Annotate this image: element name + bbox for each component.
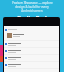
staticText: Android screen [21, 9, 43, 13]
button[interactable] [5, 62, 59, 68]
button[interactable] [5, 27, 59, 32]
button[interactable] [5, 48, 59, 54]
staticText: design & build for every [15, 5, 49, 9]
staticText: Radio Pad [17, 14, 47, 22]
button[interactable] [5, 41, 59, 47]
staticText: Feature Showcase — explore [12, 1, 53, 5]
button[interactable] [7, 33, 59, 38]
button[interactable] [5, 55, 59, 61]
